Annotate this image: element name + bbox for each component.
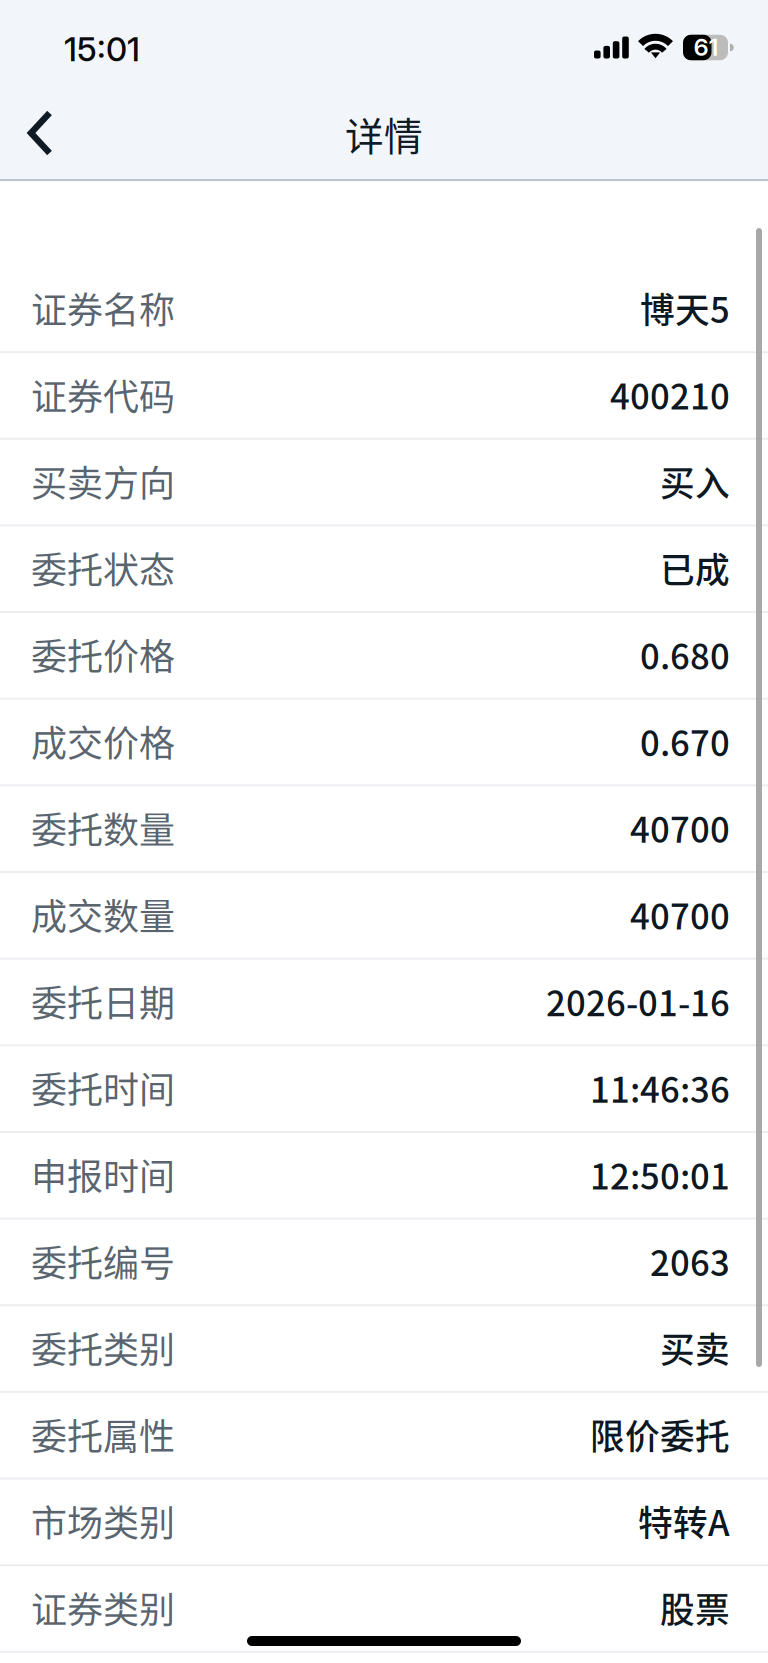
staticText: 委托状态 [31, 542, 175, 594]
button[interactable]: 委托类别 [0, 1304, 768, 1391]
button[interactable]: 证券名称 [0, 264, 768, 351]
staticText: 详情 [345, 106, 423, 162]
staticText: 15:01 [64, 29, 140, 69]
staticText: 40700 [630, 889, 730, 939]
button[interactable]: 委托日期 [0, 958, 768, 1044]
staticText: 委托类别 [31, 1322, 175, 1374]
button[interactable]: 证券代码 [0, 351, 768, 438]
staticText: 申报时间 [31, 1148, 175, 1200]
staticText: 买入 [660, 456, 730, 506]
staticText: 400210 [610, 369, 730, 420]
button[interactable]: 成交数量 [0, 871, 768, 958]
staticText: 委托日期 [31, 975, 175, 1027]
staticText: 成交数量 [31, 888, 175, 940]
staticText: 买卖方向 [31, 455, 175, 507]
staticText: 特转A [638, 1496, 730, 1546]
staticText: 0.670 [640, 716, 730, 766]
button[interactable]: 委托编号 [0, 1218, 768, 1304]
staticText: 股票 [660, 1582, 730, 1633]
staticText: 12:50:01 [590, 1149, 730, 1199]
staticText: 委托数量 [31, 802, 175, 854]
staticText: 2026-01-16 [546, 976, 730, 1026]
button[interactable]: 市场类别 [0, 1478, 768, 1564]
button[interactable]: 委托状态 [0, 524, 768, 611]
button[interactable]: Back [0, 92, 73, 179]
staticText: 证券名称 [31, 282, 175, 334]
staticText: 博天5 [640, 283, 730, 333]
button[interactable]: 委托属性 [0, 1391, 768, 1478]
staticText: 0.680 [640, 629, 730, 679]
staticText: 委托属性 [31, 1408, 175, 1460]
staticText: 市场类别 [31, 1495, 175, 1547]
staticText: 委托时间 [31, 1062, 175, 1114]
button[interactable]: 委托数量 [0, 784, 768, 871]
button[interactable]: 证券类别 [0, 1564, 768, 1651]
staticText: 2063 [650, 1236, 730, 1286]
staticText: 委托编号 [31, 1235, 175, 1287]
staticText: 证券类别 [31, 1581, 175, 1634]
staticText: 成交价格 [31, 715, 175, 767]
staticText: 限价委托 [590, 1409, 730, 1459]
staticText: 61 [693, 32, 718, 61]
staticText: 买卖 [660, 1322, 730, 1373]
staticText: 已成 [660, 543, 730, 593]
button[interactable]: 委托时间 [0, 1044, 768, 1131]
button[interactable]: 买卖方向 [0, 438, 768, 524]
button[interactable]: 成交价格 [0, 698, 768, 784]
staticText: 委托价格 [31, 628, 175, 680]
staticText: 11:46:36 [590, 1063, 730, 1113]
staticText: 40700 [630, 803, 730, 853]
staticText: 证券代码 [31, 368, 175, 420]
button[interactable]: 委托价格 [0, 611, 768, 698]
button[interactable]: 申报时间 [0, 1131, 768, 1218]
